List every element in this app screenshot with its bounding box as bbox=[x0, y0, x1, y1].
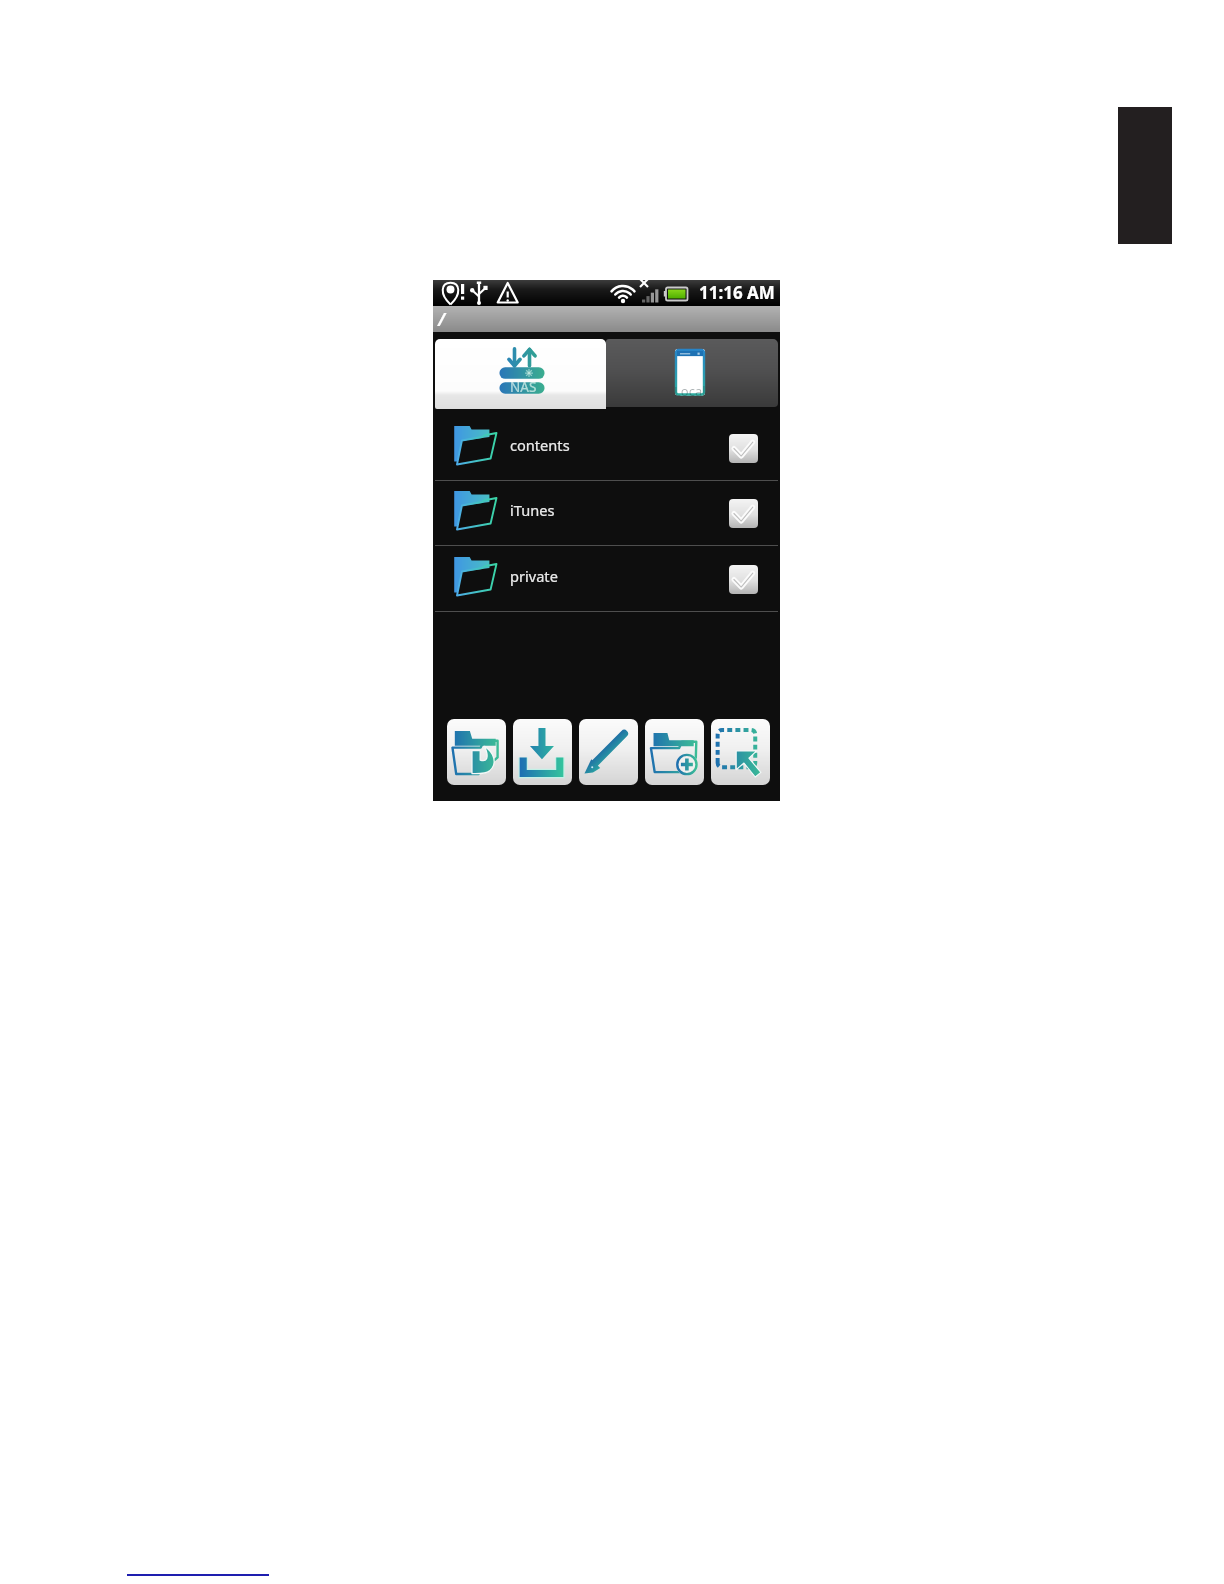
staticText: iTunes bbox=[510, 500, 555, 520]
staticText: NAS bbox=[510, 378, 537, 396]
button[interactable]: contents bbox=[433, 415, 780, 481]
button[interactable]: Rename bbox=[579, 719, 638, 785]
button[interactable]: NAS tab bbox=[435, 339, 606, 409]
button[interactable]: Local tab bbox=[606, 339, 778, 407]
staticText: 11:16 AM bbox=[699, 281, 775, 304]
button[interactable]: Open parent folder bbox=[447, 719, 506, 785]
staticText: private bbox=[510, 566, 558, 586]
staticText: contents bbox=[510, 435, 570, 455]
button[interactable]: Select all bbox=[711, 719, 770, 785]
button[interactable]: iTunes bbox=[433, 480, 780, 546]
button[interactable]: Select iTunes bbox=[729, 499, 758, 528]
button[interactable]: Select contents bbox=[729, 434, 758, 463]
staticText: Local bbox=[674, 382, 706, 400]
staticText: / bbox=[438, 308, 446, 331]
button[interactable]: New folder bbox=[645, 719, 704, 785]
button[interactable]: Download bbox=[513, 719, 572, 785]
button[interactable]: private bbox=[433, 546, 780, 612]
button[interactable]: Select private bbox=[729, 565, 758, 594]
